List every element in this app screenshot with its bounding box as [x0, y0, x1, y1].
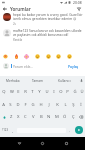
staticText: O — [59, 89, 63, 95]
staticText: L — [64, 102, 67, 108]
button[interactable]: C — [22, 111, 29, 123]
staticText: Q — [2, 89, 6, 95]
button[interactable]: E — [15, 85, 22, 99]
button[interactable]: V — [29, 111, 37, 123]
button[interactable]: Ö — [61, 111, 69, 123]
staticText: . — [69, 128, 71, 133]
button[interactable]: Send — [73, 123, 85, 137]
button[interactable]: Smiley emoji — [67, 54, 72, 59]
button[interactable]: X — [15, 111, 22, 123]
button[interactable]: Merhaba — [0, 76, 25, 85]
staticText: G — [31, 102, 35, 108]
button[interactable]: Smiley emoji — [46, 54, 51, 59]
button[interactable]: M — [53, 111, 61, 123]
button[interactable]: S — [7, 99, 14, 111]
button[interactable]: Smiley emoji — [35, 54, 40, 59]
staticText: Z — [10, 114, 13, 120]
button[interactable]: D — [14, 99, 21, 111]
staticText: Yorumlar — [10, 6, 31, 12]
button[interactable]: Z — [8, 111, 15, 123]
staticText: D — [16, 102, 20, 108]
staticText: F — [24, 102, 27, 108]
button[interactable]: Fire emoji — [14, 54, 19, 59]
staticText: Yanıtla — [13, 38, 23, 42]
button[interactable]: Filter — [76, 6, 82, 12]
button[interactable]: I — [50, 85, 57, 99]
staticText: İ — [80, 102, 82, 108]
staticText: , — [12, 128, 14, 133]
button[interactable]: B — [37, 111, 45, 123]
button[interactable]: Q — [0, 85, 8, 99]
button[interactable]: Ü — [78, 85, 85, 99]
staticText: mafhe123 Sonuclara ve cok basarıldım ulk… — [13, 29, 83, 37]
button[interactable]: ?123 — [0, 123, 10, 137]
button[interactable]: İ — [77, 99, 85, 111]
staticText: P — [66, 89, 69, 95]
button[interactable]: Ş — [69, 99, 77, 111]
button[interactable]: Heart hands emoji — [3, 54, 8, 59]
button[interactable]: Back — [2, 6, 8, 12]
button[interactable]: Yorum ekle… — [11, 64, 66, 68]
button[interactable]: Comma — [10, 123, 16, 137]
staticText: Paylaş — [68, 64, 79, 68]
staticText: X — [17, 114, 20, 120]
button[interactable]: Y — [36, 85, 43, 99]
button[interactable]: L — [61, 99, 69, 111]
button[interactable]: A — [0, 99, 7, 111]
staticText: 2s — [13, 22, 16, 26]
button[interactable]: Shift — [0, 111, 8, 123]
staticText: hepsi bu kadar yorum is a very good. Guz… — [13, 13, 83, 21]
staticText: Y — [38, 89, 41, 95]
staticText: Ç — [72, 114, 75, 120]
staticText: U — [45, 89, 49, 95]
staticText: W — [10, 89, 14, 95]
button[interactable]: Home — [38, 139, 47, 148]
button[interactable]: G — [29, 99, 37, 111]
staticText: I — [53, 89, 55, 95]
button[interactable]: T — [29, 85, 36, 99]
button[interactable]: Kullanıcı — [51, 76, 77, 85]
button[interactable]: R — [22, 85, 29, 99]
staticText: T — [31, 89, 34, 95]
button[interactable]: N — [45, 111, 53, 123]
button[interactable]: P — [64, 85, 71, 99]
button[interactable]: O — [57, 85, 64, 99]
button[interactable]: F — [21, 99, 29, 111]
staticText: Tamam — [32, 79, 44, 83]
staticText: K — [56, 102, 59, 108]
staticText: Ü — [80, 89, 84, 95]
staticText: Kullanıcı — [58, 79, 71, 83]
staticText: Ö — [63, 114, 67, 120]
button[interactable]: Recents — [62, 139, 71, 148]
staticText: M — [55, 114, 59, 120]
staticText: H — [39, 102, 43, 108]
button[interactable]: U — [43, 85, 50, 99]
button[interactable]: mafhe123 Sonuclara ve cok basarıldım ulk… — [3, 29, 83, 42]
staticText: Yorum ekle… — [13, 64, 33, 68]
staticText: ?123 — [2, 128, 9, 132]
staticText: 20:08 — [73, 0, 82, 5]
button[interactable]: Back — [15, 139, 24, 148]
button[interactable]: H — [37, 99, 45, 111]
staticText: S — [9, 102, 12, 108]
staticText: Merhaba — [6, 79, 20, 83]
button[interactable]: Smiley emoji — [56, 54, 61, 59]
button[interactable]: Tamam — [25, 76, 51, 85]
button[interactable]: W — [8, 85, 15, 99]
button[interactable]: Flower emoji — [24, 54, 29, 59]
button[interactable]: J — [45, 99, 53, 111]
button[interactable]: Ç — [69, 111, 77, 123]
staticText: B — [40, 114, 43, 120]
button[interactable]: Backspace — [77, 111, 85, 123]
staticText: C — [24, 114, 27, 120]
staticText: N — [47, 114, 51, 120]
button[interactable]: Voice input — [77, 76, 85, 85]
staticText: V — [32, 114, 35, 120]
button[interactable]: Ğ — [71, 85, 78, 99]
button[interactable]: hepsi bu kadar yorum is a very good. Guz… — [3, 13, 83, 26]
button[interactable]: K — [53, 99, 61, 111]
button[interactable]: Paylaş — [66, 64, 79, 68]
staticText: J — [48, 102, 50, 108]
